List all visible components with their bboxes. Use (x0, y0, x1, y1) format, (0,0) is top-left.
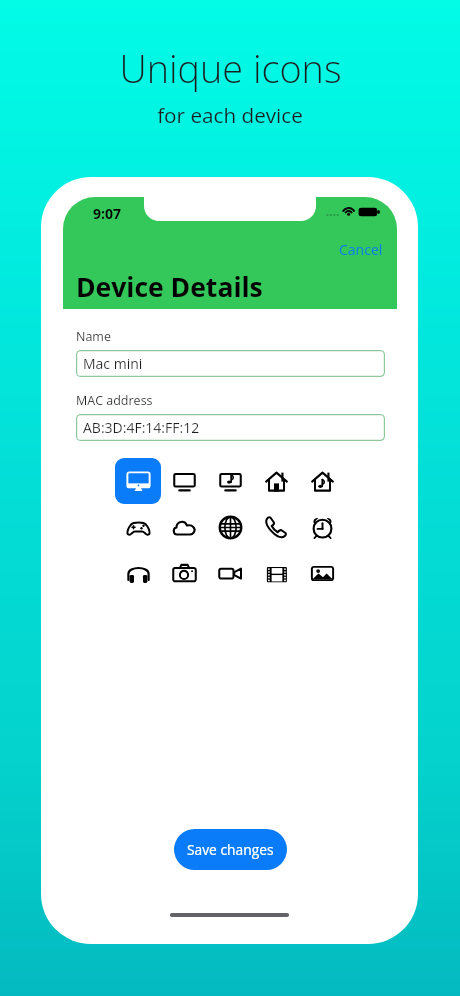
staticText: AB:3D:4F:14:FF:12 (83, 418, 200, 437)
button[interactable]: Headphones (115, 550, 161, 596)
button[interactable]: Monitor (115, 458, 161, 504)
staticText: Save changes (187, 840, 274, 859)
button[interactable]: AB:3D:4F:14:FF:12 (76, 414, 385, 441)
button[interactable]: Save changes (174, 829, 287, 870)
staticText: Device Details (76, 269, 263, 305)
button[interactable]: TV music (207, 458, 253, 504)
button[interactable]: Cloud (161, 504, 207, 550)
staticText: 9:07 (93, 204, 122, 223)
staticText: for each device (157, 101, 303, 129)
button[interactable]: Mac mini (76, 350, 385, 377)
button[interactable]: TV (161, 458, 207, 504)
button[interactable]: Alarm (299, 504, 345, 550)
button[interactable]: Video (207, 550, 253, 596)
button[interactable]: Phone (253, 504, 299, 550)
button[interactable]: Film (253, 550, 299, 596)
button[interactable]: Cancel (333, 234, 389, 265)
button[interactable]: Home music (299, 458, 345, 504)
button[interactable]: Globe (207, 504, 253, 550)
button[interactable]: Camera (161, 550, 207, 596)
button[interactable]: Gamepad (115, 504, 161, 550)
button[interactable]: Photo (299, 550, 345, 596)
staticText: MAC address (76, 392, 153, 409)
button[interactable]: Home (253, 458, 299, 504)
staticText: Mac mini (83, 354, 143, 373)
staticText: Cancel (339, 240, 383, 259)
staticText: Name (76, 328, 111, 345)
staticText: Unique icons (119, 43, 342, 94)
